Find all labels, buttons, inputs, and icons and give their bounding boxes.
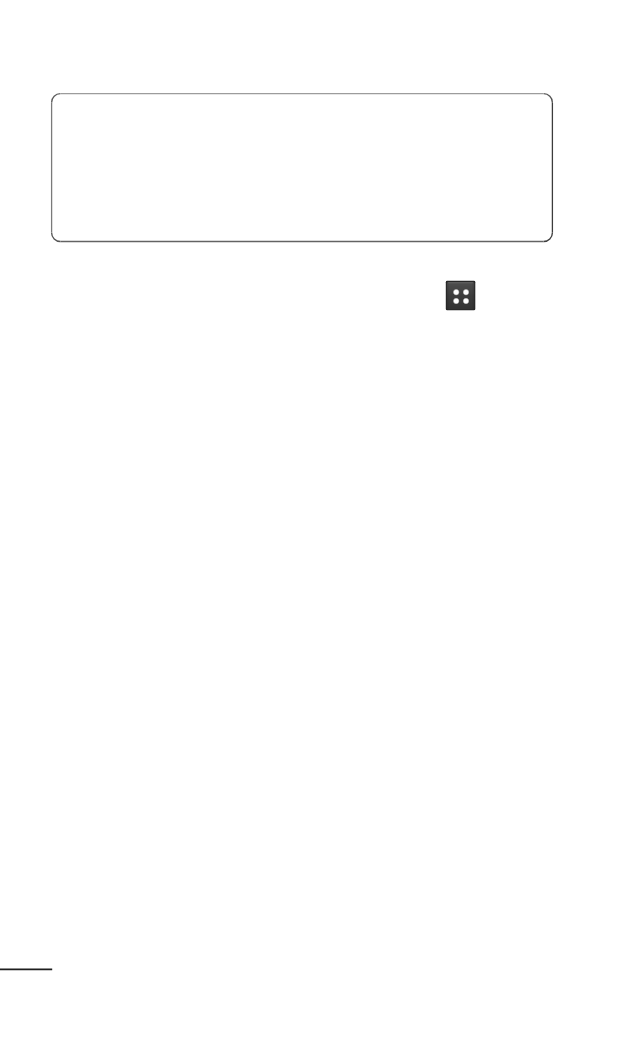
button[interactable]: Show all apps	[444, 279, 476, 311]
button[interactable]	[50, 92, 554, 243]
